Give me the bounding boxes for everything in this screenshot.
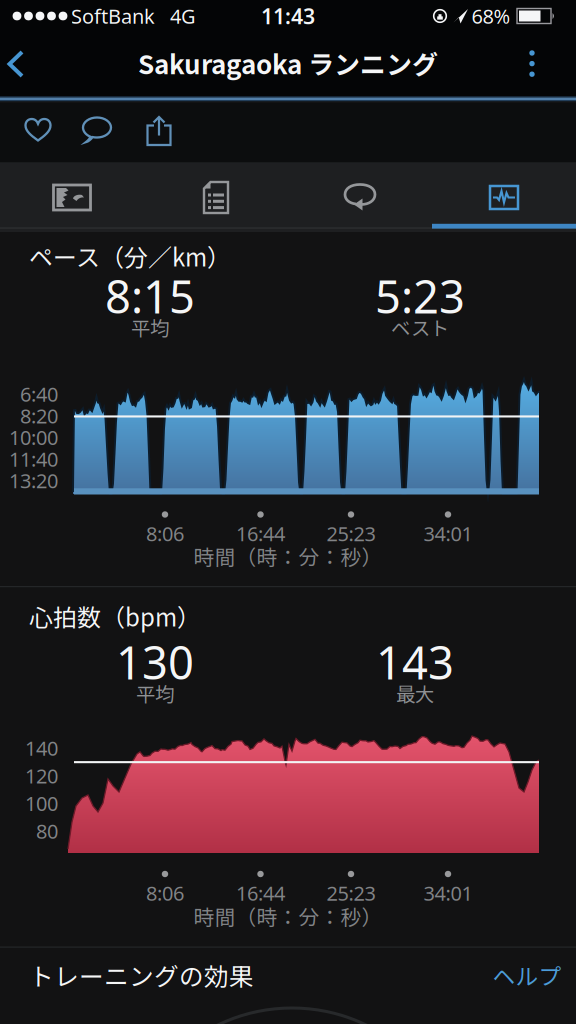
staticText: 4G [170,3,196,29]
staticText: 130 [116,632,194,692]
staticText: 8:06 [146,880,184,906]
staticText: 8:06 [146,520,184,547]
staticText: Sakuragaoka ランニング [138,44,438,82]
button[interactable]: Laps [288,163,432,231]
staticText: 10:00 [9,424,58,451]
staticText: 34:01 [423,520,472,547]
staticText: 16:44 [236,520,285,547]
staticText: 5:23 [375,266,465,326]
button[interactable]: Share [145,115,173,147]
button[interactable]: More options [522,49,542,79]
button[interactable]: Like [23,116,53,144]
staticText: 心拍数（bpm） [29,599,201,633]
staticText: トレーニングの効果 [29,957,254,993]
button[interactable]: Back [5,49,26,78]
staticText: ペース（分／km） [29,239,231,273]
staticText: 平均 [131,313,169,341]
staticText: 11:40 [9,446,58,472]
staticText: 68% [471,3,510,29]
staticText: SoftBank [71,3,155,29]
staticText: 143 [376,632,454,692]
staticText: 120 [25,762,58,789]
staticText: 11:43 [261,2,315,30]
button[interactable]: Comment [81,116,113,144]
staticText: ヘルプ [492,959,561,991]
staticText: 平均 [136,679,174,707]
staticText: 最大 [396,679,434,707]
staticText: 時間（時：分：秒） [193,901,382,931]
staticText: 6:40 [20,381,58,407]
staticText: 8:15 [105,266,195,326]
staticText: 時間（時：分：秒） [193,541,382,571]
staticText: 100 [25,790,58,817]
staticText: 8:20 [20,402,58,429]
staticText: 140 [25,735,58,761]
button[interactable]: ヘルプ [486,951,567,999]
button[interactable]: Details [144,163,288,231]
button[interactable]: Map [0,163,144,231]
button[interactable]: Charts [432,163,576,231]
staticText: 25:23 [326,520,375,547]
staticText: 80 [36,818,58,844]
staticText: ベスト [391,313,449,341]
staticText: 34:01 [423,880,472,906]
staticText: 13:20 [9,467,58,494]
staticText: 25:23 [326,880,375,906]
staticText: 16:44 [236,880,285,906]
